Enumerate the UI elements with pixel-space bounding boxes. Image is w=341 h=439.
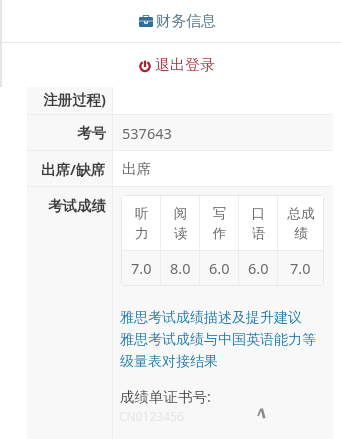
staticText: 财务信息 (156, 12, 216, 31)
other: 退出登录 (139, 59, 151, 72)
staticText: 7.0 (131, 258, 152, 278)
staticText: 总成绩 (286, 205, 316, 242)
staticText: CN0123456 (119, 408, 184, 424)
staticText: 8.0 (170, 258, 191, 278)
button[interactable]: 退出登录 (0, 43, 341, 87)
staticText: 退出登录 (155, 56, 215, 75)
staticText: 出席/缺席 (41, 159, 106, 179)
staticText: 537643 (122, 123, 172, 143)
other: 财务信息 (139, 15, 153, 27)
staticText: 考号 (77, 124, 106, 142)
staticText: 出席 (122, 160, 151, 178)
staticText: 6.0 (209, 258, 230, 278)
staticText: 写作 (212, 205, 227, 242)
staticText: 听力 (134, 205, 149, 242)
staticText: 阅读 (173, 205, 188, 242)
staticText: 7.0 (290, 258, 311, 278)
button[interactable]: 雅思考试成绩描述及提升建议 (120, 309, 302, 327)
staticText: 成绩单证书号: (120, 386, 211, 406)
button[interactable]: 雅思考试成绩与中国英语能力等级量表对接结果 (120, 331, 323, 370)
staticText: 口语 (251, 205, 266, 242)
staticText: 注册过程) (43, 89, 106, 109)
staticText: 考试成绩 (48, 197, 106, 215)
button[interactable]: 财务信息 (0, 0, 341, 42)
staticText: 6.0 (248, 258, 269, 278)
